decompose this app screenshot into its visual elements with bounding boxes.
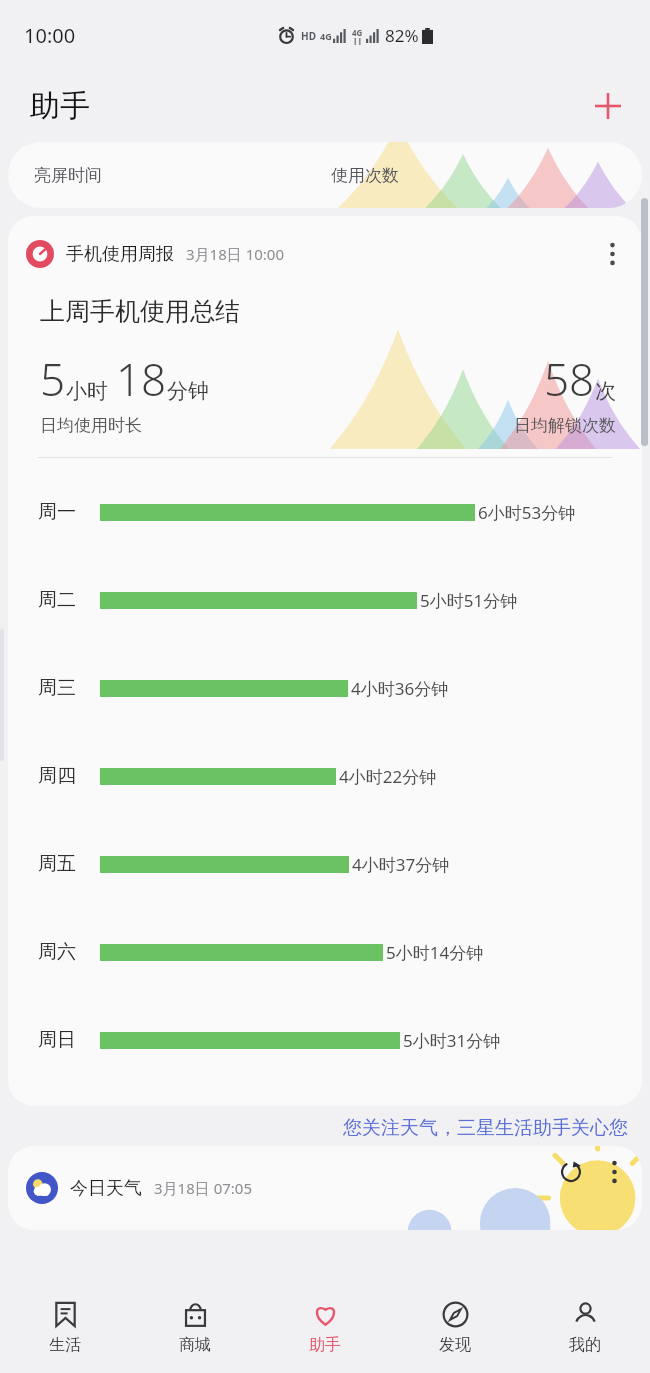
staticText: 3月18日 10:00: [186, 244, 284, 264]
staticText: 4小时36分钟: [351, 677, 449, 700]
staticText: 生活: [49, 1335, 81, 1355]
staticText: 周一: [38, 500, 100, 524]
staticText: 手机使用周报: [66, 243, 174, 266]
staticText: 日均解锁次数: [514, 415, 616, 436]
button[interactable]: 商城: [130, 1283, 260, 1373]
button[interactable]: 今日天气: [8, 1146, 642, 1230]
staticText: 5小时31分钟: [403, 1029, 501, 1052]
staticText: 5小时14分钟: [386, 941, 484, 964]
staticText: HD: [301, 29, 316, 43]
staticText: 4G: [320, 30, 332, 42]
button[interactable]: 您关注天气，三星生活助手关心您: [343, 1116, 628, 1140]
button[interactable]: 周六: [38, 908, 632, 996]
staticText: 周六: [38, 940, 100, 964]
staticText: 商城: [179, 1335, 211, 1355]
button[interactable]: More options: [594, 1152, 634, 1192]
button[interactable]: 亮屏时间: [8, 142, 642, 208]
button[interactable]: 助手: [260, 1283, 390, 1373]
button[interactable]: Refresh: [555, 1156, 587, 1188]
staticText: 3月18日 07:05: [154, 1178, 252, 1198]
staticText: 日均使用时长: [40, 415, 142, 436]
staticText: 周四: [38, 764, 100, 788]
staticText: 使用次数: [331, 165, 399, 186]
button[interactable]: 周三: [38, 644, 632, 732]
staticText: 4小时22分钟: [339, 765, 437, 788]
staticText: 发现: [439, 1335, 471, 1355]
button[interactable]: 我的: [520, 1283, 650, 1373]
staticText: 周日: [38, 1028, 100, 1052]
staticText: 今日天气: [70, 1177, 142, 1200]
staticText: 小时: [66, 378, 108, 404]
button[interactable]: Add: [584, 82, 632, 130]
staticText: 10:00: [24, 22, 76, 49]
staticText: 18: [116, 349, 167, 409]
button[interactable]: More options: [592, 234, 632, 274]
staticText: 周三: [38, 676, 100, 700]
staticText: 分钟: [167, 378, 209, 404]
staticText: 5小时51分钟: [420, 589, 518, 612]
staticText: 我的: [569, 1335, 601, 1355]
button[interactable]: 周五: [38, 820, 632, 908]
staticText: 次: [595, 378, 616, 404]
button[interactable]: 周二: [38, 556, 632, 644]
staticText: 4小时37分钟: [352, 853, 450, 876]
staticText: 6小时53分钟: [478, 501, 576, 524]
staticText: 82%: [385, 24, 419, 47]
button[interactable]: 周一: [38, 468, 632, 556]
button[interactable]: 生活: [0, 1283, 130, 1373]
staticText: 助手: [30, 87, 90, 125]
staticText: 4G: [352, 27, 363, 38]
button[interactable]: 周四: [38, 732, 632, 820]
staticText: 58: [544, 349, 595, 409]
button[interactable]: 发现: [390, 1283, 520, 1373]
staticText: 助手: [309, 1335, 341, 1355]
staticText: 上周手机使用总结: [40, 296, 240, 327]
staticText: 5: [40, 349, 66, 409]
staticText: 周二: [38, 588, 100, 612]
staticText: 周五: [38, 852, 100, 876]
staticText: 亮屏时间: [34, 165, 102, 186]
button[interactable]: 手机使用周报: [8, 216, 642, 1106]
button[interactable]: 周日: [38, 996, 632, 1084]
